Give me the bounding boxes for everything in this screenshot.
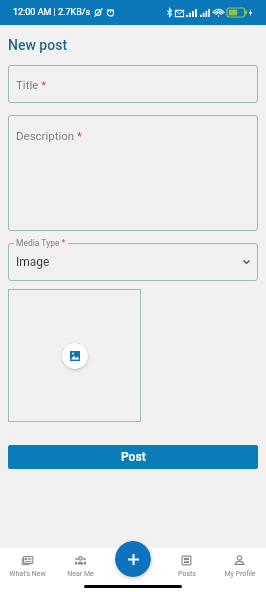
staticText: Title * xyxy=(16,78,47,91)
button[interactable]: Add post xyxy=(115,541,151,577)
button[interactable]: My Profile xyxy=(213,548,266,592)
button[interactable]: Image xyxy=(8,243,258,281)
staticText: Description * xyxy=(16,129,83,142)
staticText: What's New xyxy=(9,570,46,578)
button[interactable]: Description * xyxy=(8,115,258,231)
staticText: Post xyxy=(121,450,146,464)
button[interactable]: What's New xyxy=(0,548,54,592)
button[interactable]: Post xyxy=(8,445,258,469)
button[interactable]: Title * xyxy=(8,65,258,103)
staticText: 12:00 AM | 2.7KB/s xyxy=(13,7,91,18)
staticText: Media Type * xyxy=(16,238,66,248)
staticText: Posts xyxy=(178,570,196,578)
staticText: New post xyxy=(8,37,68,53)
button[interactable]: Near Me xyxy=(54,548,107,592)
button[interactable]: Posts xyxy=(160,548,213,592)
staticText: Image xyxy=(16,255,50,269)
staticText: Near Me xyxy=(67,570,94,578)
button[interactable]: Pick image xyxy=(62,343,88,369)
staticText: My Profile xyxy=(224,570,256,578)
